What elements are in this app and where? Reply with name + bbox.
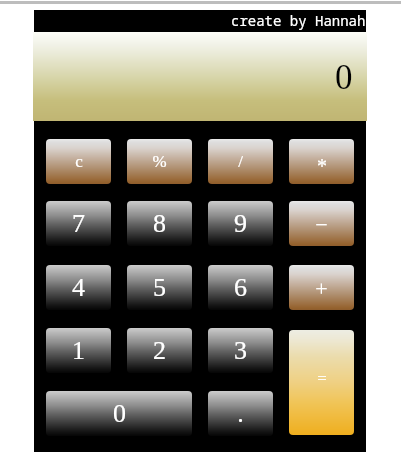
button[interactable]: 7 bbox=[46, 201, 111, 246]
staticText: 4 bbox=[72, 273, 85, 302]
staticText: 9 bbox=[234, 209, 247, 238]
staticText: * bbox=[317, 155, 327, 177]
staticText: 8 bbox=[153, 209, 166, 238]
button[interactable]: − bbox=[289, 201, 354, 246]
button[interactable]: 1 bbox=[46, 328, 111, 373]
staticText: = bbox=[317, 369, 327, 388]
staticText: 3 bbox=[234, 336, 247, 365]
button[interactable]: c bbox=[46, 139, 111, 184]
staticText: create by Hannah bbox=[231, 11, 366, 30]
button[interactable]: 4 bbox=[46, 265, 111, 310]
staticText: 6 bbox=[234, 273, 247, 302]
button[interactable]: 3 bbox=[208, 328, 273, 373]
button[interactable]: . bbox=[208, 391, 273, 436]
button[interactable]: / bbox=[208, 139, 273, 184]
button[interactable]: % bbox=[127, 139, 192, 184]
staticText: − bbox=[315, 212, 328, 236]
button[interactable]: 9 bbox=[208, 201, 273, 246]
staticText: + bbox=[315, 276, 328, 300]
button[interactable]: 8 bbox=[127, 201, 192, 246]
staticText: . bbox=[237, 399, 244, 428]
staticText: 1 bbox=[72, 336, 85, 365]
staticText: 0 bbox=[335, 58, 353, 97]
button[interactable]: 6 bbox=[208, 265, 273, 310]
button[interactable]: = bbox=[289, 330, 354, 435]
staticText: 7 bbox=[72, 209, 85, 238]
button[interactable]: + bbox=[289, 265, 354, 310]
button[interactable]: 0 bbox=[46, 391, 192, 436]
staticText: 5 bbox=[153, 273, 166, 302]
staticText: % bbox=[152, 152, 167, 171]
staticText: / bbox=[238, 152, 243, 171]
button[interactable]: 2 bbox=[127, 328, 192, 373]
button[interactable]: 5 bbox=[127, 265, 192, 310]
staticText: 2 bbox=[153, 336, 166, 365]
staticText: 0 bbox=[113, 399, 126, 428]
button[interactable]: * bbox=[289, 139, 354, 184]
staticText: c bbox=[75, 152, 83, 171]
